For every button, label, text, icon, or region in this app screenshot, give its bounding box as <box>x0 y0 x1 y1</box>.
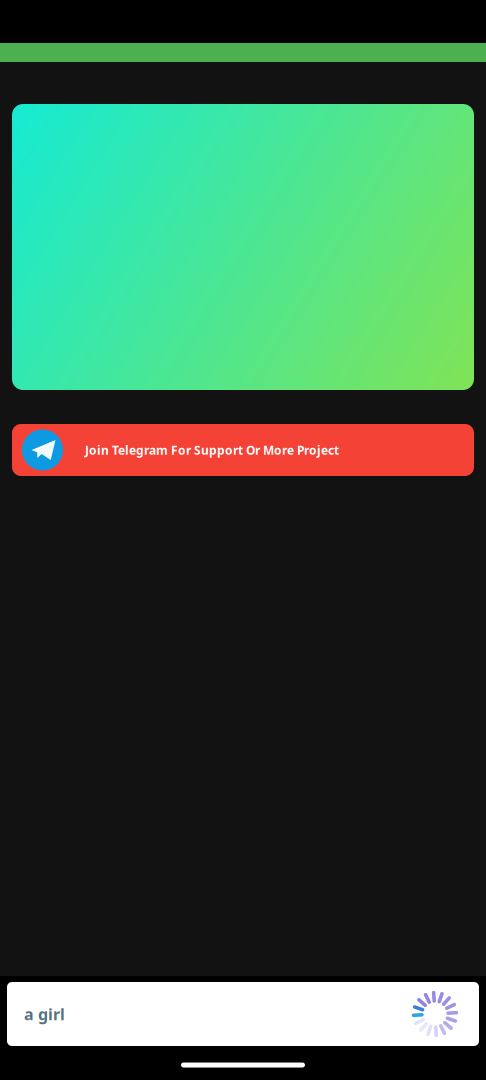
staticText: Join Telegram For Support Or More Projec… <box>85 442 339 458</box>
staticText: a girl <box>24 1003 65 1025</box>
button[interactable]: Join Telegram For Support Or More Projec… <box>12 424 474 476</box>
